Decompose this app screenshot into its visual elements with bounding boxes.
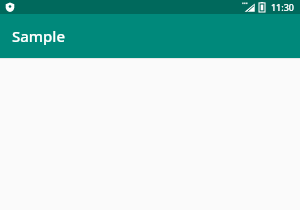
other: Security notification	[5, 2, 15, 12]
other: LTE signal strength	[242, 2, 255, 12]
other: Battery	[259, 2, 265, 12]
staticText: 11:30	[270, 1, 294, 13]
staticText: Sample	[12, 26, 65, 46]
